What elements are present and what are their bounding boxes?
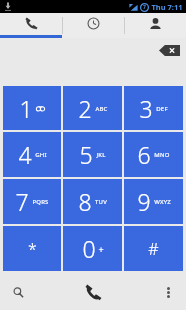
button[interactable]: 3: [124, 86, 183, 130]
staticText: PQRS: [32, 198, 49, 206]
staticText: 7: [15, 186, 29, 217]
staticText: +: [98, 243, 104, 255]
button[interactable]: #: [124, 226, 183, 271]
button[interactable]: *: [3, 226, 61, 271]
button[interactable]: 4: [3, 132, 61, 177]
button[interactable]: 8: [63, 179, 122, 224]
staticText: WXYZ: [154, 198, 171, 206]
staticText: 3: [139, 93, 153, 124]
button[interactable]: Keypad tab: [0, 13, 62, 38]
button[interactable]: 9: [124, 179, 183, 224]
staticText: 0: [82, 233, 96, 264]
staticText: 7: [143, 4, 146, 11]
staticText: DEF: [156, 105, 168, 113]
staticText: TUV: [95, 198, 107, 206]
staticText: MNO: [154, 151, 170, 159]
staticText: 6: [137, 139, 151, 170]
staticText: 1: [19, 93, 33, 124]
button[interactable]: Backspace: [159, 45, 180, 56]
staticText: JKL: [96, 151, 106, 159]
button[interactable]: Recents tab: [63, 13, 124, 38]
button[interactable]: 7: [3, 179, 61, 224]
button[interactable]: More options: [158, 282, 178, 302]
button[interactable]: 0: [63, 226, 122, 271]
button[interactable]: 6: [124, 132, 183, 177]
staticText: 2: [78, 93, 92, 124]
staticText: 9: [137, 186, 151, 217]
staticText: #: [148, 238, 159, 260]
button[interactable]: 2: [63, 86, 122, 130]
button[interactable]: Search: [8, 282, 28, 302]
staticText: *: [28, 238, 37, 260]
staticText: 4: [18, 139, 32, 170]
button[interactable]: Contacts tab: [125, 13, 186, 38]
staticText: 5: [79, 139, 93, 170]
staticText: Thu 7:11: [151, 2, 183, 12]
staticText: ABC: [95, 105, 108, 113]
staticText: GHI: [35, 151, 47, 159]
button[interactable]: 1: [3, 86, 61, 130]
staticText: 8: [78, 186, 92, 217]
button[interactable]: Call: [78, 277, 108, 307]
button[interactable]: 5: [63, 132, 122, 177]
